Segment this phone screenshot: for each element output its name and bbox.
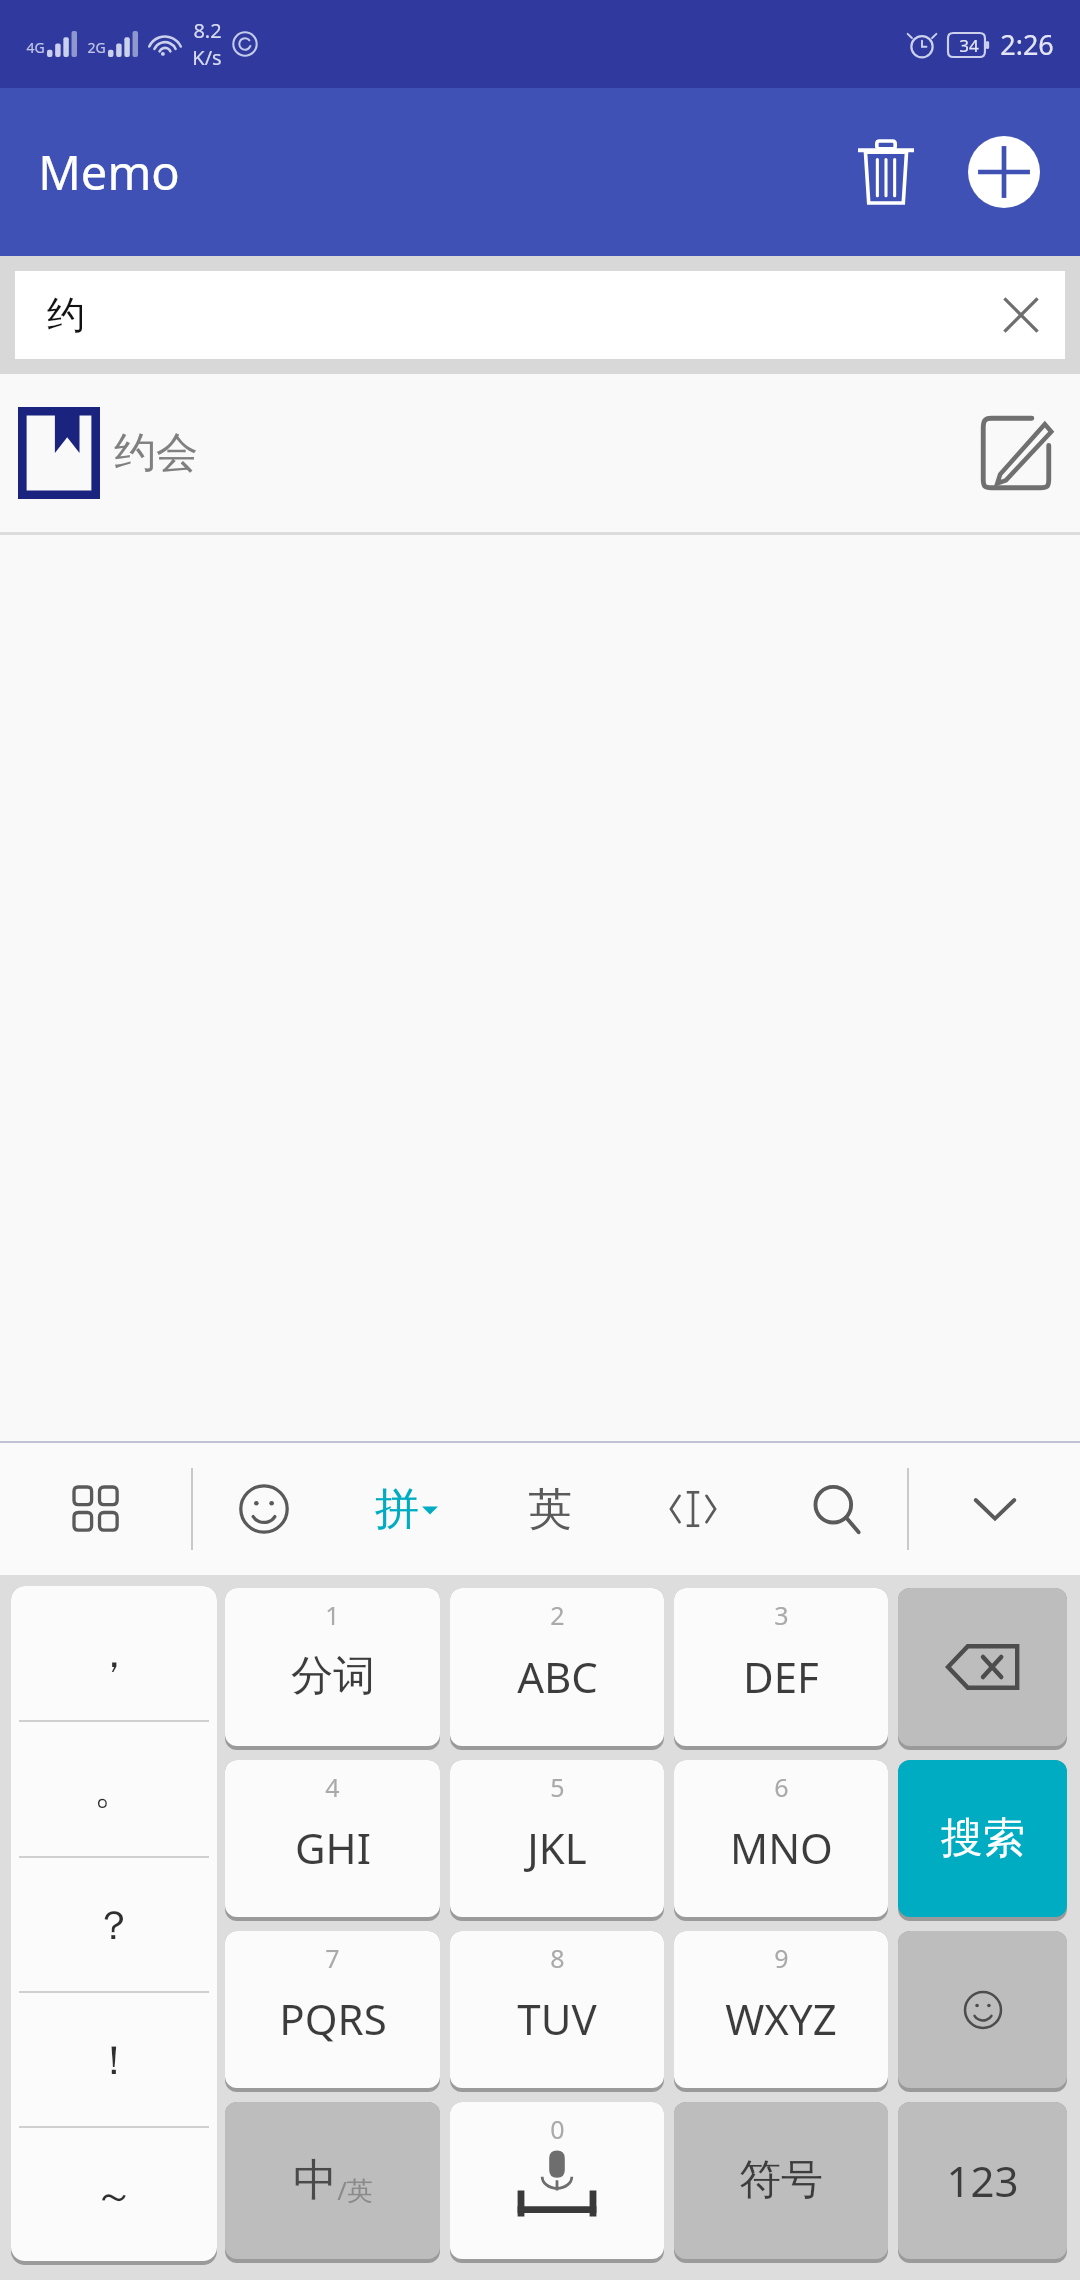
staticText: 拼 (375, 1482, 419, 1537)
staticText: 2:26 (1000, 26, 1054, 63)
button[interactable]: 搜索 (898, 1760, 1067, 1917)
button[interactable]: 6 (674, 1760, 888, 1917)
button[interactable]: 英 (478, 1443, 621, 1575)
button[interactable]: ？ (11, 1858, 217, 1991)
staticText: 8 (550, 1941, 565, 1975)
button[interactable]: 约会 (0, 374, 1080, 532)
staticText: 2G (87, 38, 106, 57)
staticText: 3 (774, 1598, 789, 1632)
staticText: K/s (192, 44, 222, 71)
button[interactable]: Emoji (193, 1443, 335, 1575)
button[interactable]: 1 (225, 1588, 440, 1746)
staticText: 。 (94, 1764, 134, 1814)
staticText: ！ (94, 2035, 134, 2085)
button[interactable]: Text cursor (621, 1443, 764, 1575)
button[interactable]: 符号 (674, 2102, 888, 2259)
button[interactable]: Backspace (898, 1588, 1067, 1746)
button[interactable]: 拼 (335, 1443, 478, 1575)
staticText: 分词 (291, 1650, 375, 1703)
button[interactable]: 7 (225, 1931, 440, 2088)
staticText: 4 (325, 1770, 340, 1804)
button[interactable]: 3 (674, 1588, 888, 1746)
button[interactable]: 9 (674, 1931, 888, 2088)
button[interactable]: Emoji (898, 1931, 1067, 2088)
button[interactable]: 4 (225, 1760, 440, 1917)
staticText: 英 (528, 1482, 572, 1537)
staticText: ？ (94, 1900, 134, 1950)
button[interactable]: ！ (11, 1993, 217, 2126)
button[interactable]: Clear search (977, 271, 1065, 359)
button[interactable]: Space (450, 2102, 664, 2259)
button[interactable]: ， (11, 1586, 217, 1720)
button[interactable]: Chinese English toggle (225, 2102, 440, 2259)
staticText: 约 (47, 291, 85, 339)
staticText: GHI (295, 1819, 371, 1876)
button[interactable]: 8 (450, 1931, 664, 2088)
staticText: 9 (774, 1941, 789, 1975)
button[interactable]: 2 (450, 1588, 664, 1746)
button[interactable]: Add memo (956, 124, 1052, 220)
staticText: 4G (26, 38, 45, 57)
staticText: 123 (946, 2152, 1019, 2209)
button[interactable]: 5 (450, 1760, 664, 1917)
button[interactable]: 约 (15, 271, 1065, 359)
button[interactable]: Edit memo (966, 403, 1066, 503)
staticText: /英 (337, 2172, 373, 2208)
staticText: ABC (517, 1648, 598, 1705)
staticText: 搜索 (941, 1812, 1025, 1865)
staticText: 8.2 (193, 17, 222, 44)
staticText: 中 (293, 2153, 337, 2208)
staticText: 7 (325, 1941, 340, 1975)
staticText: 约会 (114, 427, 198, 480)
button[interactable]: 。 (11, 1722, 217, 1856)
staticText: Memo (38, 140, 180, 204)
staticText: TUV (517, 1990, 597, 2047)
button[interactable]: 123 (898, 2102, 1067, 2259)
staticText: 34 (959, 34, 979, 57)
staticText: ， (94, 1628, 134, 1678)
staticText: MNO (730, 1819, 833, 1876)
staticText: 0 (550, 2112, 565, 2146)
button[interactable]: ～ (11, 2128, 217, 2261)
button[interactable]: Keyboard panels (0, 1443, 191, 1575)
staticText: 6 (774, 1770, 789, 1804)
staticText: 1 (325, 1598, 340, 1632)
staticText: 符号 (739, 2154, 823, 2207)
button[interactable]: Delete (838, 124, 934, 220)
staticText: 2 (550, 1598, 565, 1632)
button[interactable]: Hide keyboard (909, 1443, 1080, 1575)
staticText: JKL (527, 1819, 587, 1876)
staticText: DEF (743, 1648, 819, 1705)
staticText: 5 (550, 1770, 565, 1804)
staticText: ～ (94, 2170, 134, 2220)
button[interactable]: Search (764, 1443, 907, 1575)
staticText: WXYZ (725, 1990, 837, 2047)
staticText: PQRS (279, 1990, 387, 2047)
